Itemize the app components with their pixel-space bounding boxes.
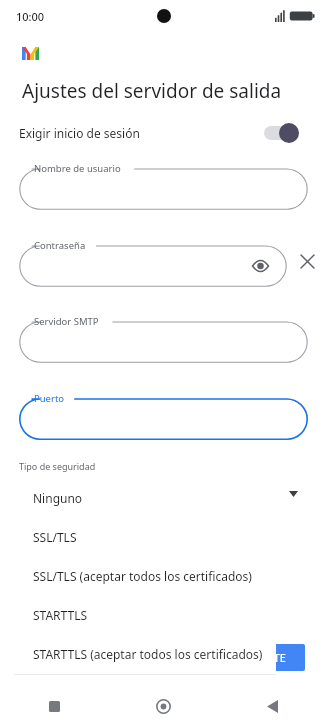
button[interactable]: Mostrar contraseña [247, 253, 273, 279]
staticText: Tipo de seguridad [19, 460, 96, 472]
staticText: Contraseña [34, 239, 86, 252]
button[interactable]: Ninguno [14, 478, 276, 517]
staticText: STARTTLS (aceptar todos los certificados… [33, 646, 263, 662]
staticText: Puerto [34, 392, 65, 405]
button[interactable]: Puerto [19, 388, 308, 440]
staticText: SSL/TLS [33, 529, 77, 545]
button[interactable]: Gmail [19, 42, 41, 64]
button[interactable]: Contraseña [19, 235, 287, 287]
staticText: 10:00 [16, 9, 45, 24]
button[interactable]: STARTTLS [14, 595, 276, 634]
button[interactable]: Borrar contraseña [287, 241, 327, 281]
staticText: Servidor SMTP [34, 315, 99, 328]
button[interactable]: Inicio [109, 684, 218, 728]
button[interactable]: Exigir inicio de sesión [261, 122, 305, 144]
staticText: Nombre de usuario [34, 162, 121, 175]
button[interactable]: SIGUIENTE [210, 644, 305, 671]
staticText: SSL/TLS (aceptar todos los certificados) [33, 568, 252, 584]
button[interactable]: Atrás [218, 684, 327, 728]
button[interactable]: Servidor SMTP [19, 311, 308, 363]
button[interactable]: Aplicaciones recientes [0, 684, 109, 728]
button[interactable]: STARTTLS (aceptar todos los certificados… [14, 634, 276, 673]
staticText: Exigir inicio de sesión [19, 125, 140, 141]
button[interactable]: Abrir tipo de seguridad [284, 485, 302, 503]
staticText: Ajustes del servidor de salida [22, 78, 282, 104]
staticText: SIGUIENTE [229, 650, 286, 665]
button[interactable]: Nombre de usuario [19, 158, 308, 210]
button[interactable]: Exigir inicio de sesión [0, 118, 327, 148]
staticText: Ninguno [33, 490, 83, 506]
staticText: STARTTLS [33, 607, 88, 623]
button[interactable]: SSL/TLS [14, 517, 276, 556]
button[interactable]: SSL/TLS (aceptar todos los certificados) [14, 556, 276, 595]
